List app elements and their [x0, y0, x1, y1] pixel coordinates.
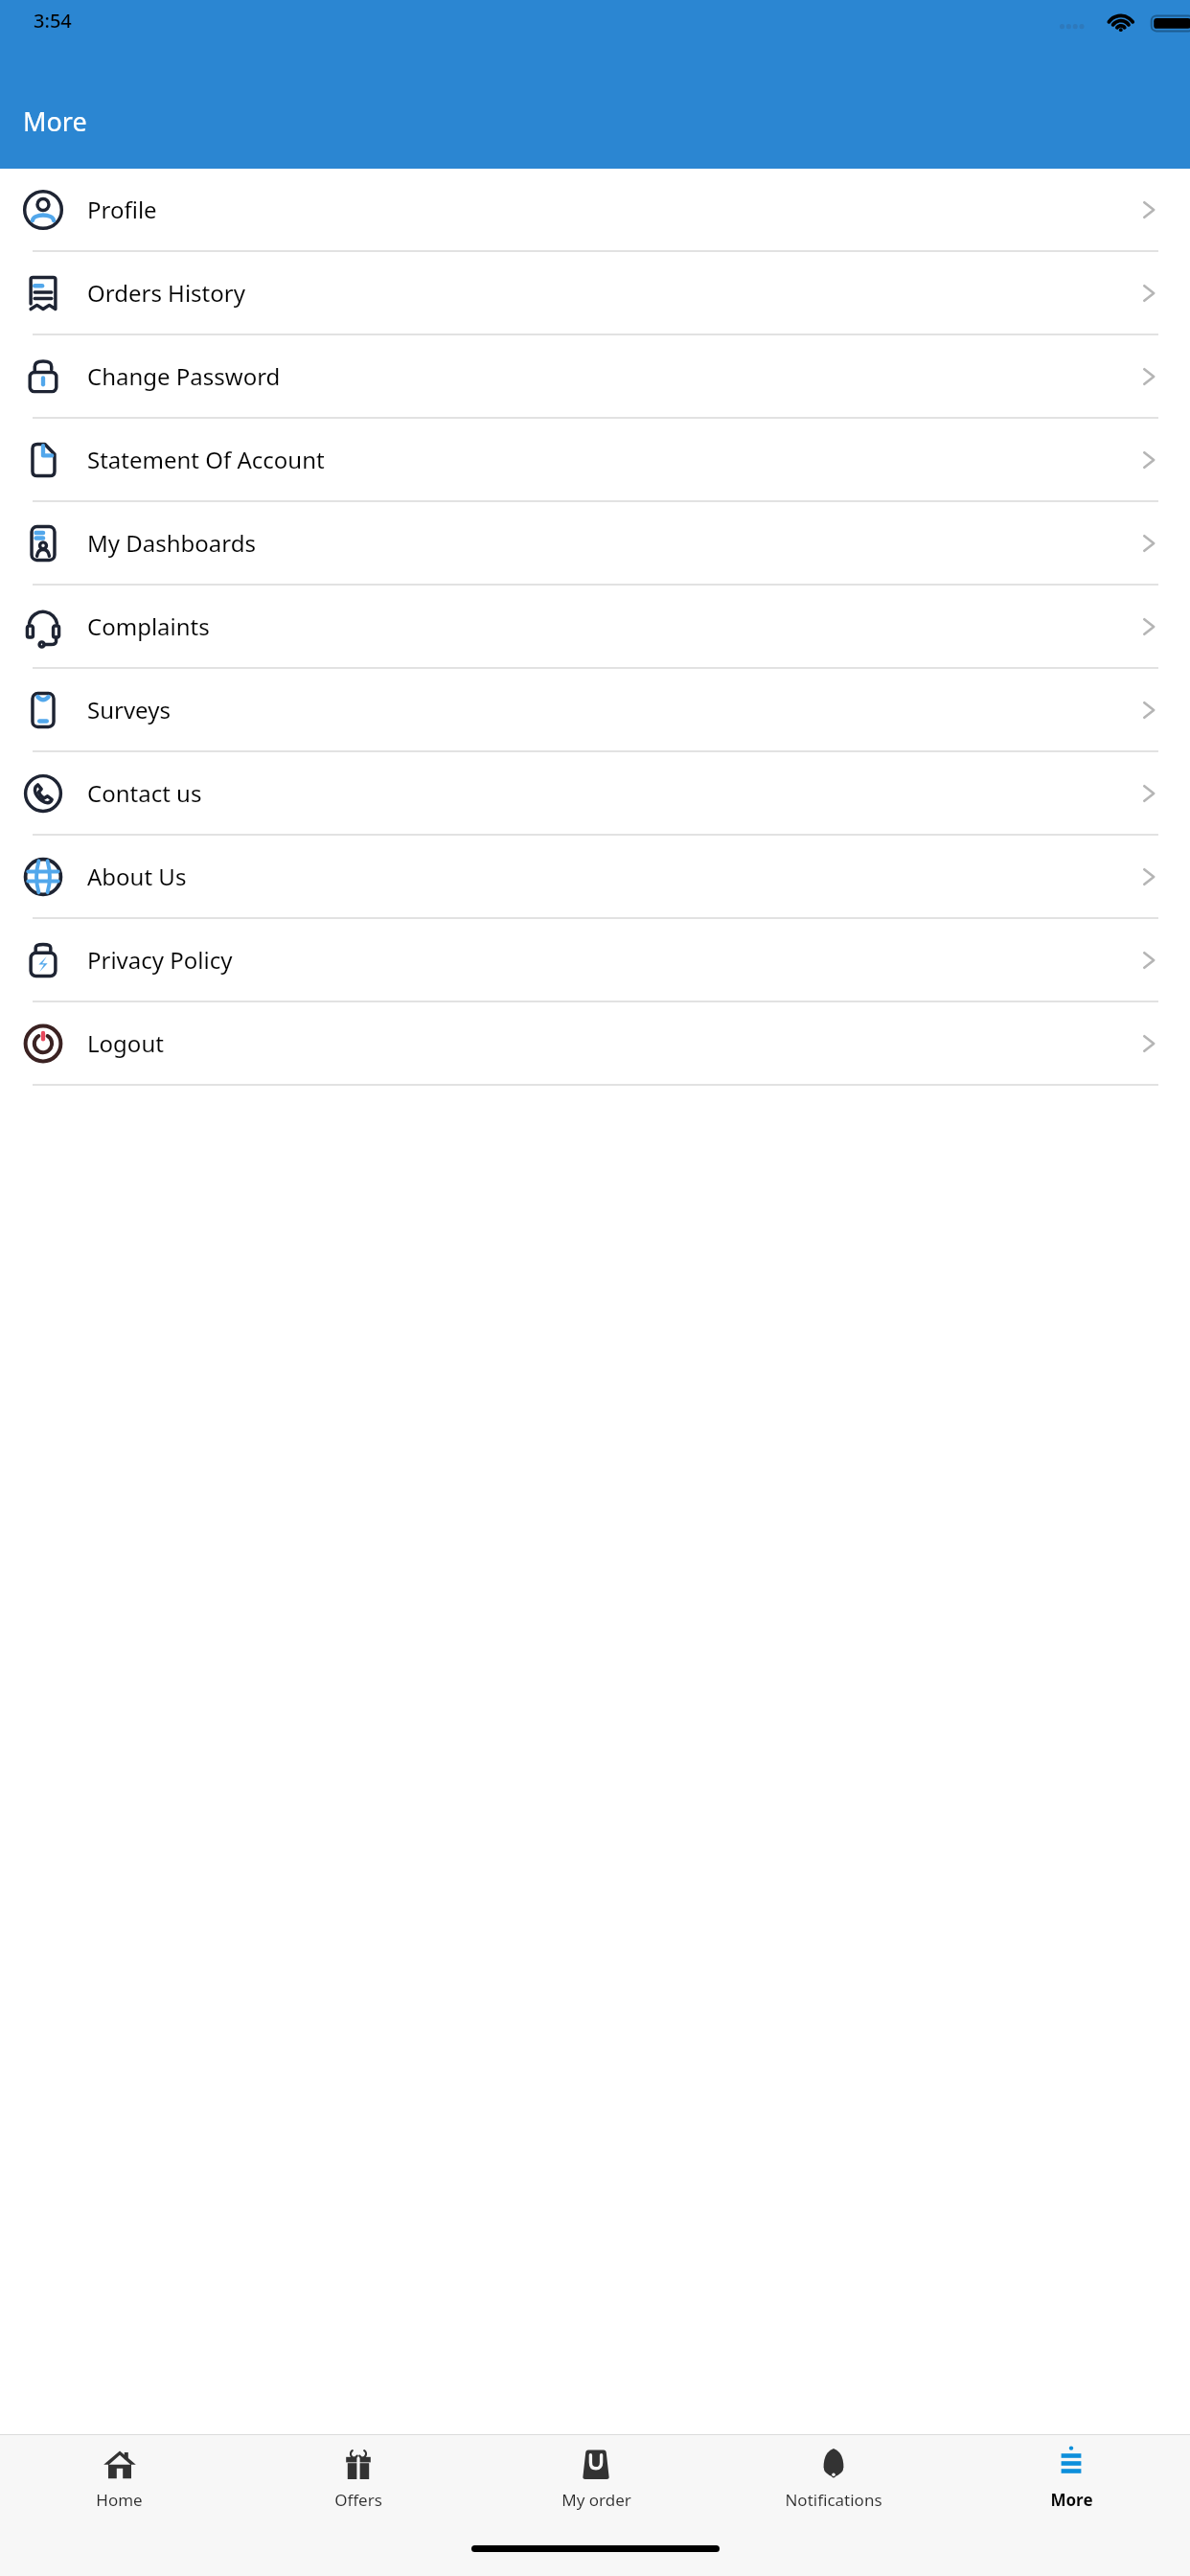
- button[interactable]: Offers: [239, 2435, 477, 2526]
- staticText: Change Password: [87, 360, 1136, 392]
- staticText: Privacy Policy: [87, 944, 1136, 976]
- button[interactable]: Contact us: [0, 752, 1190, 836]
- button[interactable]: Privacy Policy: [0, 919, 1190, 1002]
- button[interactable]: My Dashboards: [0, 502, 1190, 586]
- staticText: 3:54: [34, 8, 72, 34]
- staticText: Contact us: [87, 777, 1136, 809]
- button[interactable]: Logout: [0, 1002, 1190, 1086]
- button[interactable]: Change Password: [0, 335, 1190, 419]
- staticText: My Dashboards: [87, 527, 1136, 559]
- staticText: More: [23, 103, 87, 139]
- staticText: Surveys: [87, 694, 1136, 725]
- staticText: Profile: [87, 194, 1136, 225]
- button[interactable]: Home: [0, 2435, 239, 2526]
- staticText: Orders History: [87, 277, 1136, 309]
- staticText: About Us: [87, 861, 1136, 892]
- button[interactable]: Complaints: [0, 586, 1190, 669]
- staticText: More: [1050, 2489, 1093, 2511]
- button[interactable]: Surveys: [0, 669, 1190, 752]
- staticText: Home: [96, 2489, 143, 2511]
- button[interactable]: My order: [477, 2435, 715, 2526]
- staticText: Complaints: [87, 610, 1136, 642]
- staticText: Offers: [334, 2489, 382, 2511]
- button[interactable]: Notifications: [715, 2435, 952, 2526]
- staticText: My order: [561, 2489, 631, 2511]
- button[interactable]: Profile: [0, 169, 1190, 252]
- button[interactable]: Orders History: [0, 252, 1190, 335]
- button[interactable]: Statement Of Account: [0, 419, 1190, 502]
- staticText: Notifications: [785, 2489, 882, 2511]
- button[interactable]: About Us: [0, 836, 1190, 919]
- staticText: Statement Of Account: [87, 444, 1136, 475]
- button[interactable]: More: [952, 2435, 1190, 2526]
- staticText: Logout: [87, 1027, 1136, 1059]
